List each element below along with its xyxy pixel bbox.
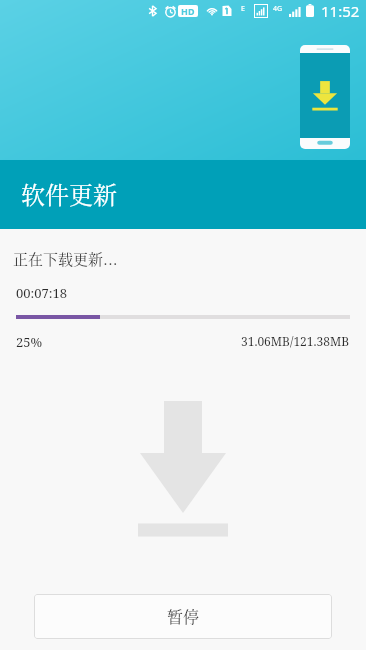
button[interactable]: 暂停 bbox=[34, 594, 332, 639]
staticText: 31.06MB/121.38MB bbox=[241, 333, 350, 349]
staticText: 软件更新 bbox=[21, 176, 117, 210]
staticText: 4G bbox=[273, 4, 283, 14]
staticText: 暂停 bbox=[167, 605, 200, 628]
staticText: 正在下载更新... bbox=[13, 248, 118, 270]
staticText: 11:52 bbox=[321, 1, 360, 21]
staticText: 25% bbox=[16, 333, 43, 351]
staticText: HD bbox=[181, 5, 195, 17]
staticText: 00:07:18 bbox=[16, 284, 68, 302]
staticText: E bbox=[241, 4, 245, 14]
